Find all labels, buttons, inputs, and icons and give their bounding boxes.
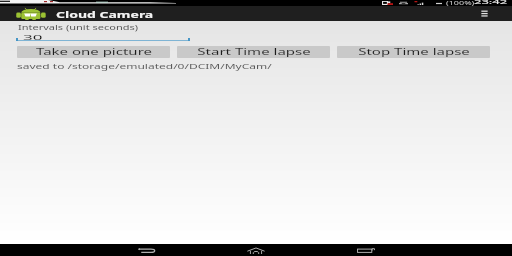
staticText: Stop Time lapse xyxy=(358,45,470,57)
staticText: 30 xyxy=(23,31,43,42)
staticText: 23:42 xyxy=(474,0,508,6)
button[interactable]: Stop Time lapse xyxy=(337,46,490,58)
button[interactable]: Recent apps xyxy=(351,244,381,256)
staticText: saved to /storage/emulated/0/DCIM/MyCam/ xyxy=(17,61,272,71)
staticText: Start Time lapse xyxy=(197,45,311,57)
staticText: Take one picture xyxy=(36,45,152,57)
button[interactable]: Back xyxy=(132,244,162,256)
staticText: (100%) xyxy=(446,0,475,6)
staticText: Intervals (unit seconds) xyxy=(18,23,139,32)
button[interactable]: More options xyxy=(477,8,491,19)
staticText: Cloud Camera xyxy=(56,9,154,20)
button[interactable]: Home xyxy=(241,244,271,256)
button[interactable]: Start Time lapse xyxy=(177,46,330,58)
button[interactable]: Take one picture xyxy=(17,46,170,58)
